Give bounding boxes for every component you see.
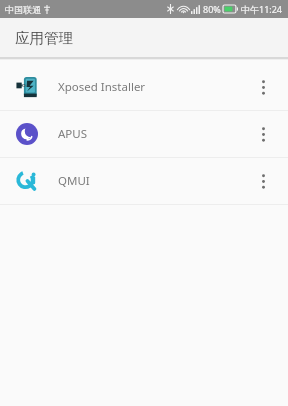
staticText: 应用管理 (15, 29, 73, 47)
staticText: 80% (203, 3, 221, 15)
staticText: QMUI (58, 173, 90, 189)
staticText: Xposed Installer (58, 79, 146, 95)
button[interactable]: More options for Xposed Installer (248, 72, 278, 102)
button[interactable]: APUS (0, 111, 288, 157)
button[interactable]: More options for QMUI (248, 166, 278, 196)
staticText: 中午11:24 (241, 3, 283, 15)
staticText: 中国联通 (5, 4, 41, 15)
button[interactable]: More options for APUS (248, 119, 278, 149)
staticText: APUS (58, 126, 88, 142)
button[interactable]: QMUI (0, 158, 288, 204)
button[interactable]: Xposed Installer (0, 64, 288, 110)
